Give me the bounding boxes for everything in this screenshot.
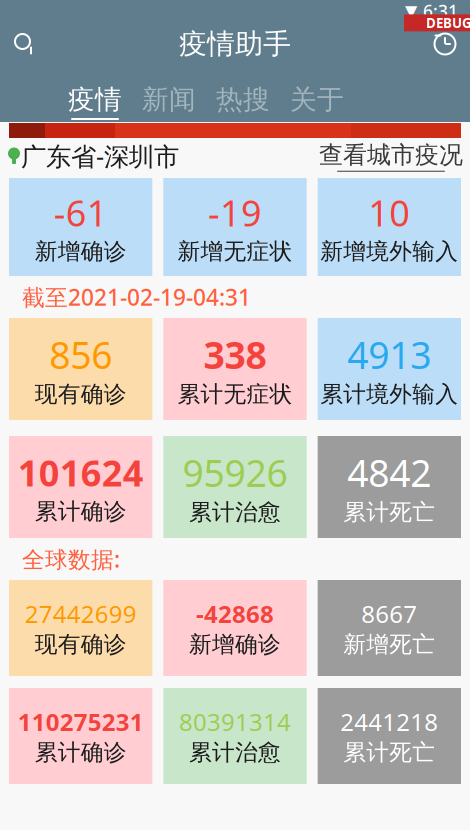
staticText: 新增确诊 <box>35 237 127 265</box>
button[interactable]: 查看城市疫况 <box>319 140 463 172</box>
staticText: 110275231 <box>18 706 144 737</box>
staticText: 疫情 <box>68 83 122 116</box>
button[interactable]: Search <box>0 22 50 66</box>
button[interactable]: 27442699 <box>9 580 152 676</box>
staticText: 新增境外输入 <box>320 237 458 265</box>
staticText: 累计确诊 <box>35 497 127 525</box>
button[interactable]: 新闻 <box>132 83 206 120</box>
staticText: 累计境外输入 <box>320 380 458 408</box>
staticText: 80391314 <box>179 706 291 737</box>
staticText: 新增死亡 <box>343 630 435 658</box>
staticText: 10 <box>368 189 410 236</box>
button[interactable]: 95926 <box>163 436 307 538</box>
button[interactable]: -19 <box>163 178 307 276</box>
staticText: 6:31 <box>423 0 458 22</box>
button[interactable]: History <box>420 22 470 66</box>
staticText: 4913 <box>347 330 431 379</box>
button[interactable]: 关于 <box>280 83 354 120</box>
staticText: 全球数据: <box>22 544 120 574</box>
staticText: 856 <box>49 330 112 379</box>
staticText: 疫情助手 <box>179 27 291 61</box>
staticText: 新闻 <box>142 83 196 116</box>
staticText: 27442699 <box>25 598 137 629</box>
staticText: 4842 <box>347 448 431 497</box>
staticText: DEBUG <box>426 14 470 32</box>
button[interactable]: 热搜 <box>206 83 280 120</box>
staticText: 8667 <box>361 598 417 629</box>
staticText: 现有确诊 <box>35 380 127 408</box>
staticText: 累计死亡 <box>343 498 435 526</box>
button[interactable]: 101624 <box>9 436 152 538</box>
staticText: -42868 <box>196 598 274 629</box>
button[interactable]: 80391314 <box>163 688 307 784</box>
button[interactable]: 110275231 <box>9 688 152 784</box>
staticText: 338 <box>203 330 266 379</box>
staticText: 热搜 <box>216 83 270 116</box>
staticText: 累计治愈 <box>189 738 281 766</box>
staticText: 累计确诊 <box>35 738 127 766</box>
button[interactable]: 4842 <box>318 436 461 538</box>
staticText: 现有确诊 <box>35 630 127 658</box>
staticText: 新增确诊 <box>189 630 281 658</box>
staticText: 累计死亡 <box>343 738 435 766</box>
button[interactable]: 疫情 <box>58 83 132 120</box>
staticText: 101624 <box>18 449 144 496</box>
button[interactable]: -42868 <box>163 580 307 676</box>
staticText: 累计治愈 <box>189 498 281 526</box>
button[interactable]: 10 <box>318 178 461 276</box>
staticText: -19 <box>208 189 262 236</box>
button[interactable]: 2441218 <box>318 688 461 784</box>
staticText: 95926 <box>182 448 287 497</box>
button[interactable]: 338 <box>163 318 307 420</box>
staticText: ▼ <box>405 2 417 20</box>
staticText: 2441218 <box>340 706 438 737</box>
staticText: 新增无症状 <box>177 237 292 265</box>
staticText: 查看城市疫况 <box>319 140 463 170</box>
button[interactable]: 8667 <box>318 580 461 676</box>
staticText: 累计无症状 <box>177 380 292 408</box>
button[interactable]: 856 <box>9 318 152 420</box>
button[interactable]: 4913 <box>318 318 461 420</box>
staticText: 关于 <box>290 83 344 116</box>
staticText: -61 <box>54 189 108 236</box>
staticText: 截至2021-02-19-04:31 <box>22 282 251 312</box>
staticText: 广东省-深圳市 <box>21 139 179 173</box>
button[interactable]: -61 <box>9 178 152 276</box>
